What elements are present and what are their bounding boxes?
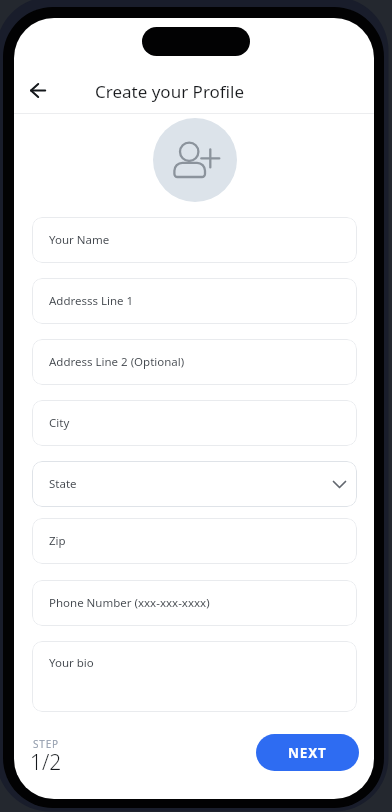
staticText: City [49,415,70,431]
button[interactable]: Your bio [32,641,357,712]
button[interactable]: Address Line 2 (Optional) [32,339,357,385]
staticText: Create your Profile [95,80,245,103]
button[interactable]: Your Name [32,217,357,263]
staticText: 1/2 [30,748,62,777]
staticText: Addresss Line 1 [49,293,134,309]
button[interactable]: Phone Number (xxx-xxx-xxxx) [32,580,357,626]
staticText: Your Name [49,232,110,248]
button[interactable]: State [32,461,357,507]
button[interactable]: Zip [32,518,357,564]
staticText: Phone Number (xxx-xxx-xxxx) [49,595,210,611]
button[interactable]: NEXT [256,734,359,771]
button[interactable]: Addresss Line 1 [32,278,357,324]
staticText: NEXT [288,744,327,762]
button[interactable] [153,118,237,202]
staticText: State [49,476,77,492]
staticText: Your bio [49,655,94,671]
button[interactable]: City [32,400,357,446]
staticText: Address Line 2 (Optional) [49,354,185,370]
staticText: Zip [49,533,66,549]
staticText: STEP [33,737,59,751]
button[interactable] [23,76,52,105]
